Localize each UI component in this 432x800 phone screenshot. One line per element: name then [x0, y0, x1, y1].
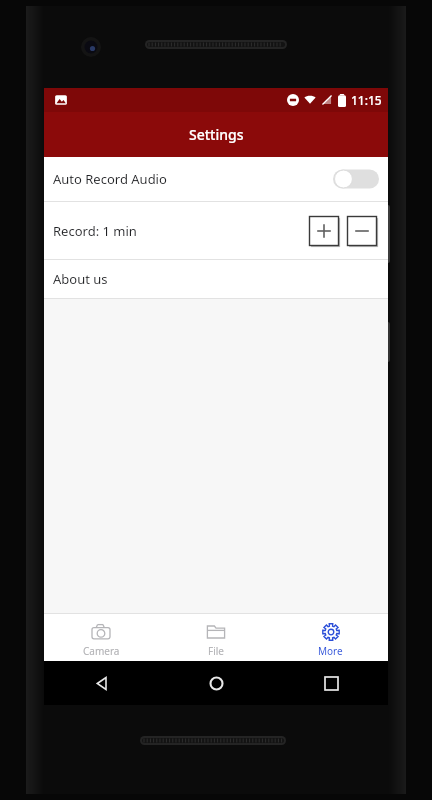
button[interactable]: Back — [88, 670, 114, 696]
staticText: More — [318, 644, 343, 658]
button[interactable]: Auto Record Audio — [44, 157, 388, 201]
button[interactable]: Auto Record Audio toggle — [333, 168, 379, 190]
staticText: Settings — [189, 125, 244, 144]
button[interactable]: Camera — [44, 617, 158, 658]
button[interactable]: More — [273, 617, 388, 658]
staticText: File — [208, 644, 224, 658]
button[interactable]: Recent apps — [318, 670, 344, 696]
staticText: Record: 1 min — [53, 222, 137, 240]
button[interactable]: Home — [203, 670, 229, 696]
button[interactable]: File — [158, 617, 273, 658]
staticText: Camera — [83, 644, 120, 658]
staticText: About us — [53, 270, 108, 288]
button[interactable]: Decrease — [345, 214, 379, 248]
staticText: Auto Record Audio — [53, 170, 167, 188]
staticText: 11:15 — [351, 92, 382, 108]
button[interactable]: Increase — [307, 214, 341, 248]
button[interactable]: About us — [44, 260, 388, 298]
